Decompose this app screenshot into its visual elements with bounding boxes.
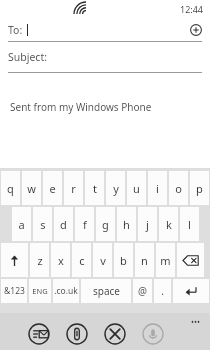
button[interactable] [173,279,209,303]
staticText: b [120,253,127,268]
staticText: g [102,217,109,232]
button[interactable]: r [64,171,83,205]
button[interactable]: m [156,243,175,277]
button[interactable]: g [96,207,115,241]
button[interactable]: y [106,171,125,205]
staticText: .co.uk [54,285,78,297]
staticText: o [175,181,182,196]
button[interactable]: w [22,171,41,205]
button[interactable]: ENG [29,279,51,303]
staticText: &123 [4,285,25,297]
button[interactable]: @ [133,279,152,303]
button[interactable]: h [117,207,136,241]
staticText: . [161,284,164,298]
button[interactable]: . [154,279,171,303]
button[interactable]: s [33,207,52,241]
staticText: v [100,253,106,268]
button[interactable]: f [75,207,94,241]
button[interactable]: Add recipient [188,22,204,38]
button[interactable]: c [72,243,91,277]
button[interactable]: b [114,243,133,277]
staticText: 12:44 [180,3,204,15]
button[interactable]: a [12,207,31,241]
staticText: u [133,181,140,196]
button[interactable]: v [93,243,112,277]
button[interactable]: j [138,207,157,241]
staticText: f [83,217,87,232]
staticText: a [18,217,25,232]
button[interactable]: n [135,243,154,277]
staticText: y [113,181,119,196]
button[interactable]: u [127,171,146,205]
staticText: s [40,217,46,232]
button[interactable]: Subject: [0,42,210,72]
staticText: Sent from my Windows Phone [10,100,152,114]
staticText: r [71,181,76,196]
button[interactable]: space [81,279,131,303]
staticText: i [156,181,159,196]
staticText: ••• [191,316,201,327]
staticText: @ [138,284,147,298]
staticText: c [79,253,85,268]
button[interactable] [177,243,204,277]
button[interactable]: x [51,243,70,277]
button[interactable]: Attach [64,321,90,347]
button[interactable]: .co.uk [53,279,79,303]
staticText: To: [8,23,23,37]
button[interactable] [1,243,28,277]
staticText: ENG [32,286,48,296]
button[interactable]: q [1,171,20,205]
staticText: e [49,181,56,196]
staticText: k [166,217,172,232]
staticText: w [27,181,36,196]
staticText: z [37,253,43,268]
staticText: Subject: [8,50,47,64]
button[interactable]: z [30,243,49,277]
button[interactable]: Sent from my Windows Phone [0,73,210,168]
staticText: q [7,181,14,196]
button[interactable]: k [159,207,178,241]
staticText: l [188,217,191,232]
staticText: p [196,181,203,196]
button[interactable]: Send [26,321,52,347]
button[interactable]: p [190,171,209,205]
button[interactable]: Voice input [140,321,166,347]
staticText: space [93,284,120,298]
staticText: t [93,181,97,196]
button[interactable]: To: [0,18,210,41]
staticText: n [141,253,148,268]
button[interactable]: l [180,207,199,241]
button[interactable]: d [54,207,73,241]
staticText: h [123,217,130,232]
button[interactable]: o [169,171,188,205]
button[interactable]: i [148,171,167,205]
button[interactable]: Cancel [102,321,128,347]
staticText: m [160,253,171,268]
button[interactable]: &123 [1,279,27,303]
button[interactable]: t [85,171,104,205]
button[interactable]: e [43,171,62,205]
staticText: x [58,253,64,268]
staticText: d [60,217,67,232]
staticText: j [146,217,149,232]
